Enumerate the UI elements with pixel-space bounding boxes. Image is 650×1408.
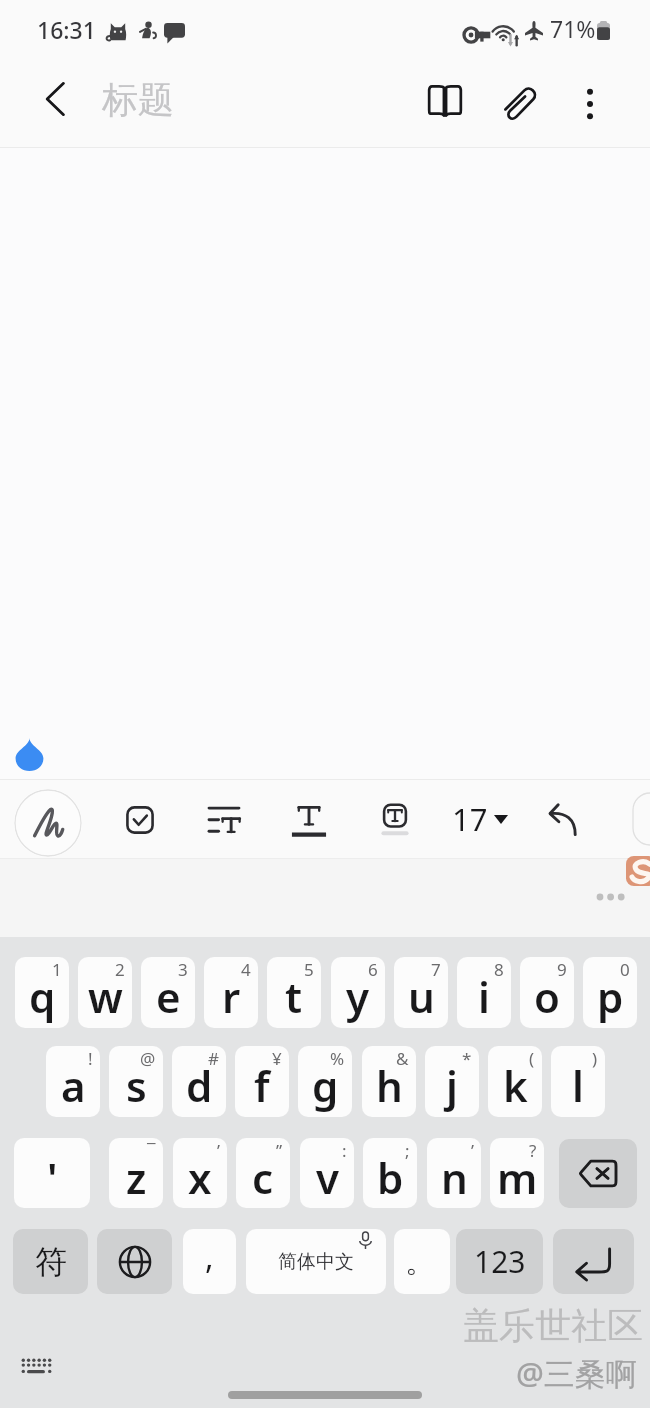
staticText: ¯: [147, 1139, 156, 1162]
button[interactable]: Comma: [183, 1229, 236, 1294]
staticText: @: [140, 1047, 156, 1070]
button[interactable]: Backspace: [559, 1139, 637, 1208]
button[interactable]: p: [583, 957, 637, 1028]
staticText: p: [597, 968, 624, 1025]
button[interactable]: Numbers: [456, 1229, 543, 1294]
staticText: s: [126, 1057, 147, 1114]
button[interactable]: c: [236, 1138, 290, 1208]
button[interactable]: Text style: [281, 793, 337, 849]
staticText: ?: [529, 1139, 537, 1162]
staticText: m: [497, 1149, 538, 1206]
button[interactable]: Change language: [97, 1229, 172, 1294]
button[interactable]: v: [300, 1138, 354, 1208]
staticText: k: [503, 1057, 528, 1114]
button[interactable]: q: [15, 957, 69, 1028]
button[interactable]: Back: [28, 71, 84, 127]
staticText: ,: [205, 1235, 214, 1279]
staticText: #: [208, 1047, 219, 1070]
staticText: 17: [452, 798, 488, 840]
staticText: d: [186, 1057, 213, 1114]
button[interactable]: Hide keyboard: [8, 1350, 64, 1382]
staticText: &: [396, 1047, 409, 1070]
button[interactable]: l: [551, 1046, 605, 1117]
staticText: w: [88, 968, 123, 1025]
button[interactable]: e: [141, 957, 195, 1028]
staticText: %: [330, 1047, 345, 1070]
staticText: ’: [217, 1139, 220, 1162]
button[interactable]: Reading mode: [417, 72, 473, 128]
button[interactable]: h: [362, 1046, 416, 1117]
button[interactable]: r: [204, 957, 258, 1028]
button[interactable]: w: [78, 957, 132, 1028]
staticText: 9: [557, 958, 567, 981]
staticText: 3: [178, 958, 188, 981]
button[interactable]: Undo: [537, 791, 593, 847]
button[interactable]: More options: [562, 76, 618, 132]
button[interactable]: d: [172, 1046, 226, 1117]
staticText: 71%: [550, 13, 596, 44]
staticText: 8: [494, 958, 504, 981]
button[interactable]: Paragraph style: [196, 791, 252, 847]
button[interactable]: y: [331, 957, 385, 1028]
staticText: o: [534, 968, 560, 1025]
staticText: :: [342, 1139, 347, 1162]
staticText: u: [408, 968, 435, 1025]
staticText: 0: [620, 958, 630, 981]
button[interactable]: m: [490, 1138, 544, 1208]
staticText: @三桑啊: [516, 1352, 637, 1394]
staticText: 简体中文: [278, 1250, 354, 1274]
staticText: 7: [431, 958, 441, 981]
staticText: n: [441, 1149, 468, 1206]
staticText: !: [88, 1047, 93, 1070]
button[interactable]: k: [488, 1046, 542, 1117]
button[interactable]: x: [173, 1138, 227, 1208]
button[interactable]: t: [267, 957, 321, 1028]
button[interactable]: z: [109, 1138, 163, 1208]
button[interactable]: n: [427, 1138, 481, 1208]
button[interactable]: Checklist: [112, 792, 168, 848]
button[interactable]: g: [298, 1046, 352, 1117]
staticText: ¥: [272, 1047, 282, 1070]
staticText: l: [572, 1057, 584, 1114]
button[interactable]: Symbols: [13, 1229, 88, 1294]
staticText: f: [254, 1057, 270, 1114]
staticText: c: [252, 1149, 274, 1206]
staticText: b: [377, 1149, 404, 1206]
button[interactable]: Enter: [553, 1229, 634, 1294]
staticText: (: [529, 1047, 535, 1070]
button[interactable]: f: [235, 1046, 289, 1117]
staticText: z: [126, 1149, 147, 1206]
button[interactable]: ': [14, 1138, 90, 1208]
staticText: g: [312, 1057, 339, 1114]
staticText: 6: [368, 958, 378, 981]
staticText: 2: [115, 958, 125, 981]
button[interactable]: Text box: [367, 793, 423, 849]
staticText: i: [478, 968, 490, 1025]
button[interactable]: Period: [394, 1229, 450, 1294]
staticText: 123: [474, 1241, 526, 1282]
staticText: h: [376, 1057, 403, 1114]
staticText: 。: [405, 1243, 435, 1281]
button[interactable]: o: [520, 957, 574, 1028]
staticText: y: [346, 968, 370, 1025]
staticText: ': [47, 1149, 58, 1206]
button[interactable]: 17: [446, 795, 514, 843]
staticText: t: [285, 968, 303, 1025]
button[interactable]: Handwriting: [14, 789, 82, 857]
button[interactable]: b: [363, 1138, 417, 1208]
button[interactable]: Space: [246, 1229, 386, 1294]
staticText: 4: [241, 958, 251, 981]
staticText: v: [316, 1149, 339, 1206]
staticText: 16:31: [37, 14, 96, 45]
button[interactable]: u: [394, 957, 448, 1028]
staticText: x: [188, 1149, 212, 1206]
staticText: 标题: [102, 77, 174, 122]
button[interactable]: j: [425, 1046, 479, 1117]
button[interactable]: a: [46, 1046, 100, 1117]
button[interactable]: s: [109, 1046, 163, 1117]
staticText: 盖乐世社区: [463, 1303, 643, 1348]
button[interactable]: i: [457, 957, 511, 1028]
staticText: 符: [35, 1242, 67, 1282]
button[interactable]: Attach file: [493, 76, 549, 132]
staticText: q: [29, 968, 56, 1025]
